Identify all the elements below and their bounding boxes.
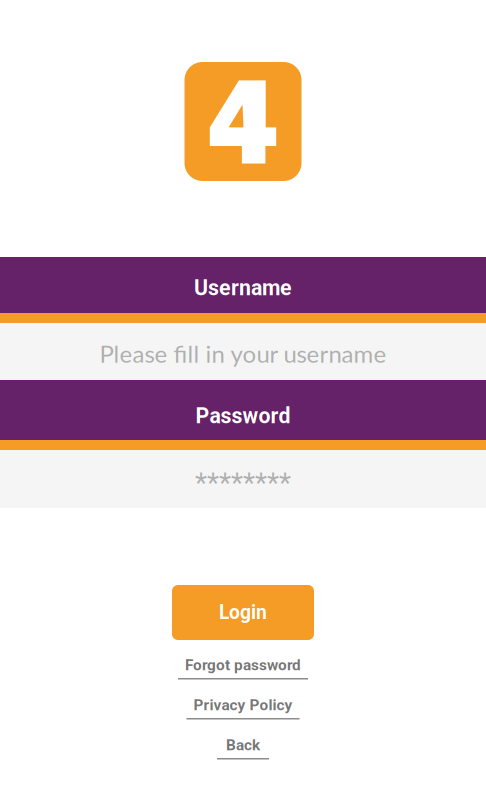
staticText: Username xyxy=(194,275,292,300)
staticText: ******** xyxy=(195,467,291,499)
button[interactable]: Back xyxy=(0,732,486,772)
staticText: Password xyxy=(195,403,290,428)
staticText: Please fill in your username xyxy=(99,339,386,368)
button[interactable]: Please fill in your username xyxy=(0,323,486,380)
staticText: Login xyxy=(219,601,267,624)
staticText: Back xyxy=(226,736,260,754)
button[interactable]: Login xyxy=(172,585,314,640)
button[interactable]: Forgot password xyxy=(0,652,486,692)
button[interactable]: Privacy Policy xyxy=(0,692,486,732)
staticText: Privacy Policy xyxy=(193,696,292,714)
button[interactable]: Password xyxy=(0,450,486,508)
staticText: Forgot password xyxy=(185,656,301,674)
